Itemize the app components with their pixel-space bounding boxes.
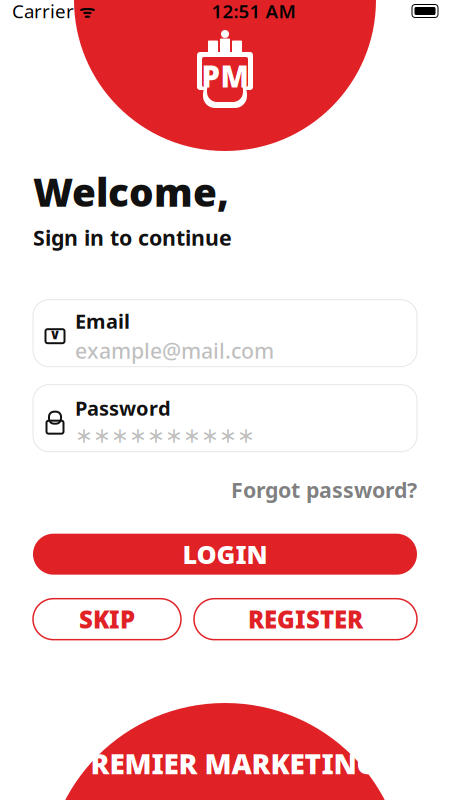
- staticText: Sign in to continue: [33, 223, 232, 252]
- button[interactable]: SKIP: [33, 599, 181, 640]
- staticText: SKIP: [79, 603, 135, 635]
- staticText: ᯤ: [74, 0, 95, 22]
- button[interactable]: Forgot password?: [0, 478, 450, 502]
- staticText: Email: [75, 308, 130, 334]
- staticText: 12:51 AM: [211, 0, 295, 23]
- staticText: PREMIER MARKETING: [72, 745, 377, 782]
- button[interactable]: REGISTER: [194, 599, 417, 640]
- staticText: Carrier: [12, 0, 74, 23]
- staticText: Password: [75, 395, 171, 421]
- staticText: PM: [201, 56, 248, 95]
- staticText: Welcome,: [33, 166, 229, 217]
- button[interactable]: LOGIN: [0, 534, 450, 575]
- staticText: ∗∗∗∗∗∗∗∗∗∗: [75, 423, 255, 448]
- staticText: ∨: [49, 326, 61, 342]
- staticText: Forgot password?: [231, 475, 417, 504]
- staticText: REGISTER: [248, 603, 363, 635]
- staticText: example@mail.com: [75, 336, 274, 365]
- staticText: LOGIN: [182, 537, 267, 571]
